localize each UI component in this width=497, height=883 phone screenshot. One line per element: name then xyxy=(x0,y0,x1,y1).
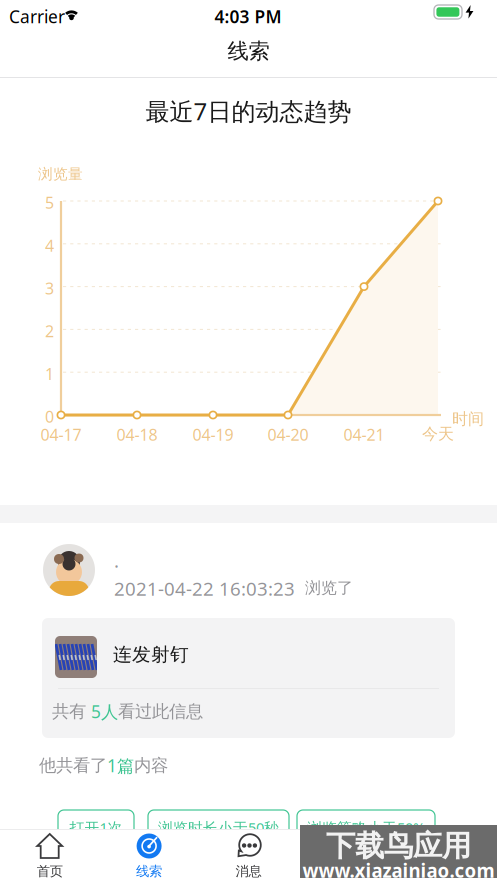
button[interactable]: 浏览时长小于50秒 xyxy=(148,810,289,845)
staticText: www.xiazainiao.com xyxy=(302,858,494,883)
staticText: 04-21 xyxy=(343,424,384,445)
staticText: 1 xyxy=(45,363,54,384)
button[interactable]: 线索 xyxy=(99,831,199,883)
staticText: 看过此信息 xyxy=(118,701,203,722)
staticText: 04-18 xyxy=(116,424,157,445)
staticText: 打开1次 xyxy=(69,818,122,837)
staticText: 1篇 xyxy=(107,754,134,777)
staticText: 4:03 PM xyxy=(214,5,281,28)
staticText: 共有 xyxy=(52,701,91,722)
staticText: 消息 xyxy=(235,863,261,879)
staticText: 内容 xyxy=(134,755,168,776)
staticText: 浏览策略小于50% xyxy=(307,818,425,837)
staticText: 04-20 xyxy=(267,424,308,445)
staticText: Carrier xyxy=(9,5,65,28)
staticText: 04-19 xyxy=(192,424,233,445)
staticText: 时间 xyxy=(452,409,484,429)
button[interactable]: 消息 xyxy=(199,831,298,883)
button[interactable]: 发现 xyxy=(298,831,398,883)
button[interactable]: 我的 xyxy=(398,831,497,883)
button[interactable]: 首页 xyxy=(0,831,99,883)
staticText: 2021-04-22 16:03:23 xyxy=(114,576,295,601)
staticText: 连发射钉 xyxy=(113,643,189,666)
staticText: 5人 xyxy=(91,700,118,723)
staticText: 0 xyxy=(45,406,54,427)
button[interactable]: 打开1次 xyxy=(58,810,134,845)
staticText: 5 xyxy=(45,192,54,213)
staticText: 浏览量 xyxy=(38,165,83,183)
staticText: 下载鸟应用 xyxy=(326,828,471,864)
staticText: 我的 xyxy=(434,863,460,879)
staticText: 线索 xyxy=(136,863,162,879)
staticText: 3 xyxy=(45,278,54,299)
staticText: 首页 xyxy=(37,863,63,879)
staticText: 浏览了 xyxy=(305,578,353,598)
staticText: 线索 xyxy=(227,38,269,64)
staticText: 今天 xyxy=(422,424,454,444)
staticText: 4 xyxy=(45,235,54,256)
staticText: 2 xyxy=(45,320,54,342)
staticText: 04-17 xyxy=(40,424,81,445)
staticText: 他共看了 xyxy=(39,755,107,776)
staticText: 最近7日的动态趋势 xyxy=(145,95,351,127)
staticText: 发现 xyxy=(335,863,361,879)
button[interactable]: 浏览策略小于50% xyxy=(297,810,435,845)
staticText: . xyxy=(114,548,119,573)
staticText: 浏览时长小于50秒 xyxy=(158,818,279,837)
